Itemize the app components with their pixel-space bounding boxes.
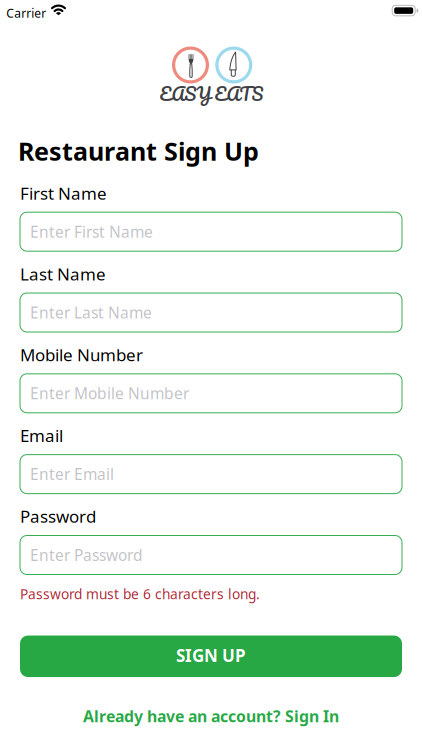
staticText: EASY EATS: [159, 79, 263, 108]
staticText: Mobile Number: [20, 343, 143, 366]
staticText: Password must be 6 characters long.: [20, 585, 260, 603]
staticText: Enter Last Name: [30, 302, 152, 323]
staticText: Enter Password: [30, 544, 143, 566]
button[interactable]: Password: [20, 535, 402, 574]
staticText: Password: [20, 505, 96, 528]
button[interactable]: Last Name: [20, 293, 402, 332]
staticText: Enter First Name: [30, 221, 153, 242]
staticText: First Name: [20, 182, 107, 205]
staticText: Already have an account? Sign In: [83, 705, 339, 727]
button[interactable]: Email: [20, 455, 402, 494]
staticText: Enter Mobile Number: [30, 383, 189, 404]
staticText: Restaurant Sign Up: [18, 134, 259, 168]
staticText: Last Name: [20, 262, 106, 285]
staticText: Carrier: [6, 5, 46, 21]
staticText: Email: [20, 424, 63, 447]
staticText: Enter Email: [30, 464, 114, 485]
button[interactable]: Already have an account? Sign In: [83, 705, 339, 727]
button[interactable]: First Name: [20, 212, 402, 251]
button[interactable]: Mobile Number: [20, 374, 402, 413]
staticText: SIGN UP: [176, 644, 246, 667]
button[interactable]: SIGN UP: [20, 635, 402, 677]
